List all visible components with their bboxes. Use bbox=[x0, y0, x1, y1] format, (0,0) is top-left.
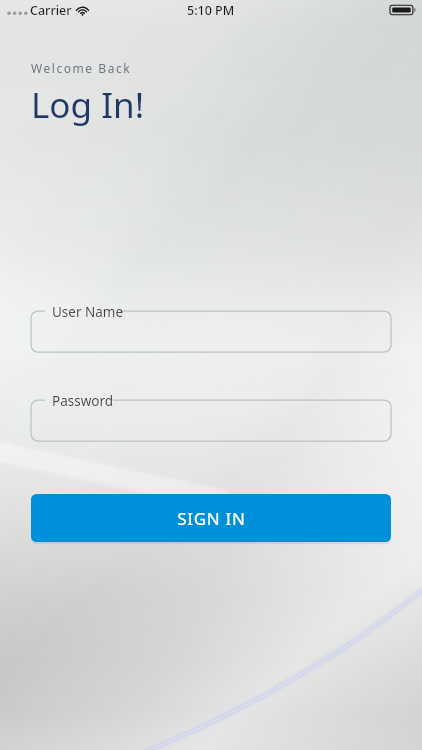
button[interactable]: Password bbox=[31, 400, 391, 441]
staticText: Carrier bbox=[30, 2, 72, 19]
staticText: Password bbox=[52, 392, 114, 410]
staticText: User Name bbox=[52, 303, 124, 321]
staticText: 5:10 PM bbox=[187, 2, 235, 19]
button[interactable]: User Name bbox=[31, 311, 391, 352]
staticText: Welcome Back bbox=[31, 60, 132, 76]
staticText: Log In! bbox=[31, 81, 145, 129]
button[interactable]: SIGN IN bbox=[31, 494, 391, 542]
staticText: SIGN IN bbox=[177, 507, 246, 530]
